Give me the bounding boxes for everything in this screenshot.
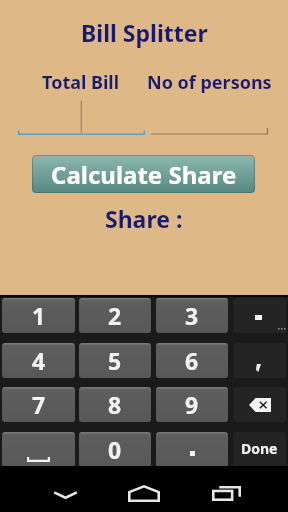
button[interactable]: 3 xyxy=(156,298,228,333)
button[interactable]: 4 xyxy=(2,343,75,378)
button[interactable]: Hide keyboard xyxy=(37,475,93,512)
staticText: 9 xyxy=(185,389,199,420)
staticText: 6 xyxy=(185,345,199,376)
button[interactable]: 6 xyxy=(156,343,228,378)
staticText: Share : xyxy=(105,203,183,234)
staticText: 8 xyxy=(108,389,122,420)
button[interactable] xyxy=(2,432,75,467)
button[interactable] xyxy=(233,343,286,378)
staticText: 7 xyxy=(32,389,46,420)
button[interactable] xyxy=(233,387,286,422)
button[interactable]: 9 xyxy=(156,387,228,422)
button[interactable]: 0 xyxy=(79,432,151,467)
button[interactable] xyxy=(156,432,228,467)
staticText: 0 xyxy=(108,434,122,465)
button[interactable]: Calculate Share xyxy=(32,155,255,193)
staticText: 3 xyxy=(185,300,199,331)
staticText: 2 xyxy=(108,300,122,331)
button[interactable]: 5 xyxy=(79,343,151,378)
staticText: 1 xyxy=(32,300,46,331)
button[interactable]: 7 xyxy=(2,387,75,422)
button[interactable]: Home xyxy=(116,472,172,512)
button[interactable]: 1 xyxy=(2,298,75,333)
staticText: 5 xyxy=(108,345,122,376)
staticText: 4 xyxy=(32,345,46,376)
button[interactable] xyxy=(233,298,286,333)
staticText: Total Bill xyxy=(42,70,120,95)
staticText: No of persons xyxy=(147,70,272,95)
button[interactable]: 8 xyxy=(79,387,151,422)
staticText: Calculate Share xyxy=(51,158,237,191)
button[interactable]: Done xyxy=(233,432,286,467)
button[interactable]: Recent apps xyxy=(198,472,254,512)
button[interactable]: 2 xyxy=(79,298,151,333)
staticText: Done xyxy=(241,439,278,458)
staticText: Bill Splitter xyxy=(81,17,208,48)
